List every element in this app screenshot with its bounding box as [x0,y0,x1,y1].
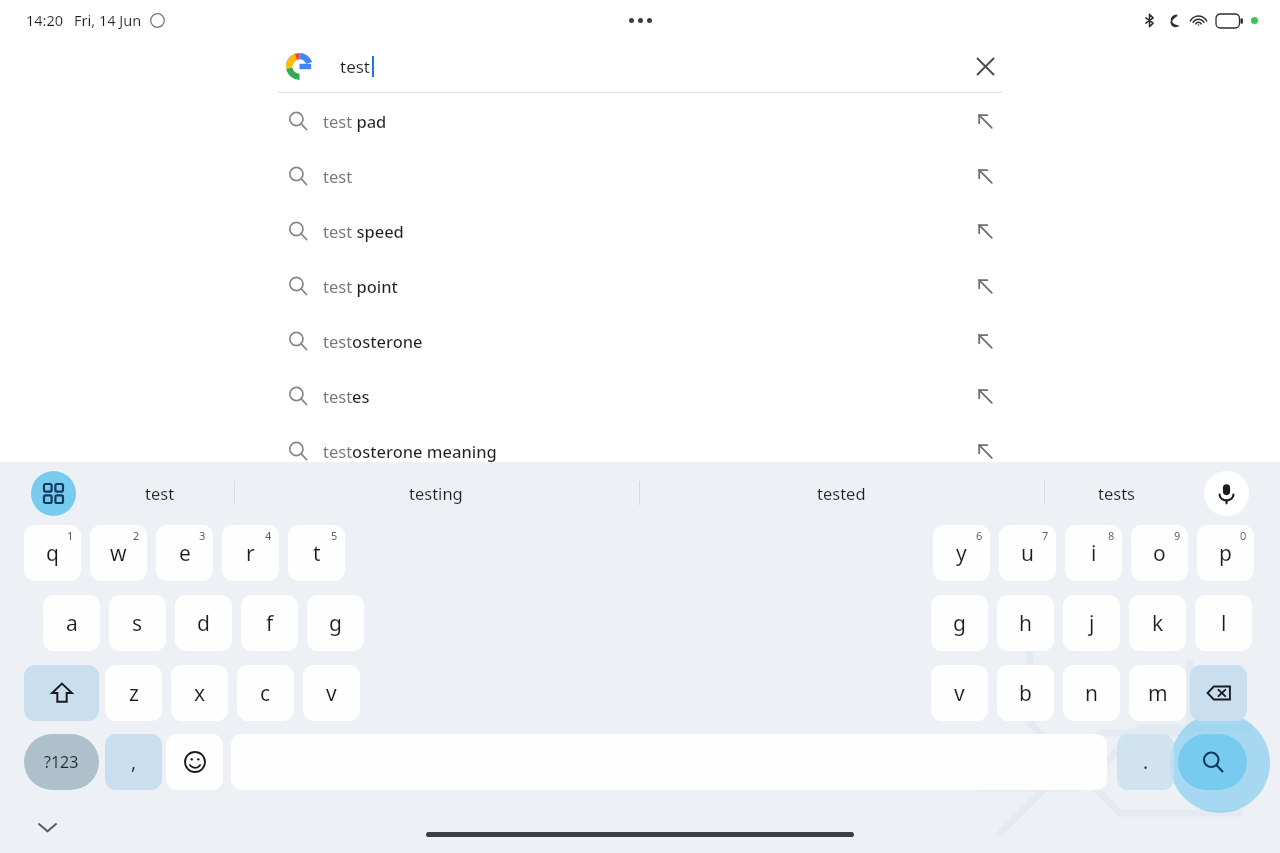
button[interactable]: d [175,595,232,651]
button[interactable]: e [156,525,213,581]
button[interactable]: y [933,525,990,581]
staticText: 4 [265,528,272,543]
button[interactable]: j [1063,595,1120,651]
button[interactable]: test pad [0,93,1280,148]
staticText: test point [323,275,398,297]
button[interactable]: Insert suggestion [970,381,1000,411]
button[interactable]: Keyboard tools [31,471,76,516]
button[interactable]: Search [1178,734,1247,790]
button[interactable]: v [303,665,360,721]
staticText: 9 [1174,528,1181,543]
staticText: p [1219,539,1232,568]
staticText: i [1091,539,1097,568]
button[interactable]: Emoji [166,734,223,790]
button[interactable]: a [43,595,100,651]
button[interactable]: i [1065,525,1122,581]
button[interactable]: test point [0,258,1280,313]
staticText: o [1153,539,1166,568]
staticText: test [323,165,353,187]
staticText: d [197,609,210,638]
button[interactable]: Insert suggestion [970,326,1000,356]
button[interactable]: Insert suggestion [970,161,1000,191]
staticText: test speed [323,220,404,242]
button[interactable]: g [307,595,364,651]
button[interactable]: c [237,665,294,721]
staticText: 3 [199,528,206,543]
staticText: e [179,539,191,568]
staticText: 8 [1108,528,1115,543]
button[interactable]: m [1129,665,1186,721]
staticText: tests [1098,482,1136,504]
button[interactable]: testes [0,368,1280,423]
button[interactable]: testosterone [0,313,1280,368]
button[interactable]: t [288,525,345,581]
button[interactable]: Shift [24,665,99,721]
button[interactable]: b [997,665,1054,721]
button[interactable]: v [931,665,988,721]
staticText: 5 [331,528,338,543]
button[interactable]: test [0,148,1280,203]
button[interactable]: tests [1047,462,1187,524]
button[interactable]: tested [771,462,911,524]
button[interactable]: z [105,665,162,721]
button[interactable]: q [24,525,81,581]
button[interactable]: test speed [0,203,1280,258]
staticText: g [329,609,342,638]
button[interactable]: l [1195,595,1252,651]
staticText: k [1152,609,1164,638]
staticText: s [132,609,143,638]
button[interactable]: g [931,595,988,651]
staticText: Fri, 14 Jun [74,10,142,30]
staticText: test pad [323,110,387,132]
button[interactable]: w [90,525,147,581]
button[interactable]: , [105,734,162,790]
staticText: 7 [1042,528,1049,543]
staticText: y [956,539,967,568]
staticText: j [1089,609,1095,638]
button[interactable]: test [0,40,1280,92]
button[interactable]: Clear [968,49,1002,83]
staticText: m [1148,679,1168,708]
button[interactable]: Insert suggestion [970,436,1000,466]
button[interactable]: ?123 [24,734,99,790]
staticText: u [1021,539,1034,568]
button[interactable]: h [997,595,1054,651]
button[interactable]: f [241,595,298,651]
button[interactable]: p [1197,525,1254,581]
button[interactable]: Backspace [1190,665,1247,721]
button[interactable]: n [1063,665,1120,721]
button[interactable]: Insert suggestion [970,271,1000,301]
staticText: h [1019,609,1032,638]
staticText: w [110,539,127,568]
button[interactable]: testing [366,462,506,524]
staticText: 14:20 [26,10,64,30]
button[interactable]: Insert suggestion [970,106,1000,136]
button[interactable]: test [90,462,230,524]
staticText: , [131,749,137,775]
staticText: testosterone [323,330,423,352]
staticText: test [340,55,371,78]
staticText: testing [409,482,463,504]
button[interactable]: k [1129,595,1186,651]
button[interactable]: x [171,665,228,721]
staticText: r [246,539,255,568]
button[interactable]: Voice input [1204,471,1249,516]
button[interactable]: Insert suggestion [970,216,1000,246]
staticText: a [66,609,78,638]
button[interactable]: . [1117,734,1174,790]
staticText: b [1019,679,1032,708]
staticText: z [129,679,139,708]
button[interactable]: r [222,525,279,581]
button[interactable]: testosterone meaning [0,423,1280,478]
staticText: n [1085,679,1098,708]
staticText: g [953,609,966,638]
staticText: ?123 [44,751,79,773]
button[interactable]: o [1131,525,1188,581]
button[interactable]: Hide keyboard [30,810,64,844]
staticText: testes [323,385,370,407]
button[interactable]: s [109,595,166,651]
staticText: 6 [976,528,983,543]
button[interactable]: u [999,525,1056,581]
staticText: 0 [1240,528,1247,543]
